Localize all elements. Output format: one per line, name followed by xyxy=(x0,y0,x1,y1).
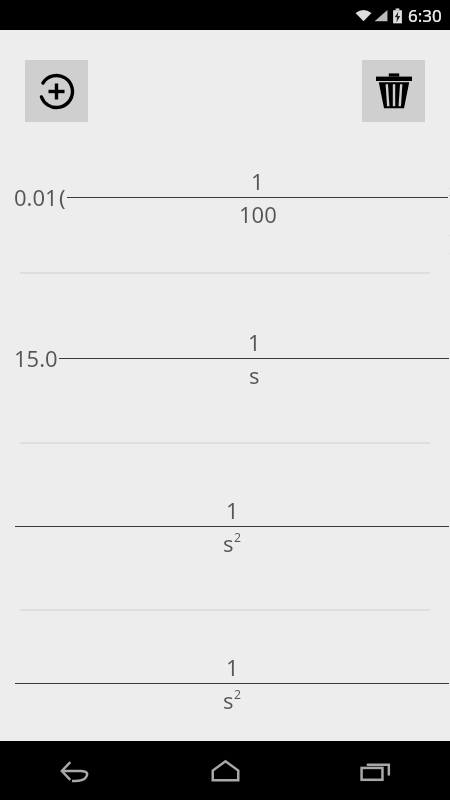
staticText: s xyxy=(223,685,234,715)
button[interactable]: 1 xyxy=(0,611,450,741)
staticText: 100 xyxy=(239,199,277,229)
button[interactable]: Recent apps xyxy=(344,741,406,800)
staticText: 1 xyxy=(226,495,239,525)
staticText: 0.01 xyxy=(14,182,58,212)
staticText: ( xyxy=(59,182,66,212)
staticText: 2 xyxy=(234,686,242,703)
staticText: 2 xyxy=(234,529,242,546)
staticText: 15.0 xyxy=(14,343,58,373)
staticText: 1 xyxy=(251,166,264,196)
staticText: 6:30 xyxy=(408,4,442,27)
button[interactable]: 0.01 xyxy=(0,122,450,272)
button[interactable]: Delete xyxy=(362,60,425,122)
staticText: s xyxy=(223,528,234,558)
staticText: s xyxy=(249,360,260,390)
button[interactable]: Add xyxy=(25,60,88,122)
button[interactable]: 15.0 xyxy=(0,274,450,442)
button[interactable]: Back xyxy=(44,741,106,800)
button[interactable]: 1 xyxy=(0,444,450,609)
staticText: 1 xyxy=(226,652,239,682)
button[interactable]: Home xyxy=(194,741,256,800)
staticText: 1 xyxy=(248,327,261,357)
